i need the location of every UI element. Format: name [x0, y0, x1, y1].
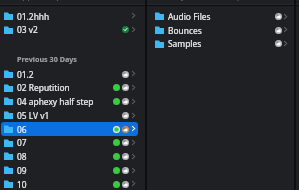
staticText: Previous 30 Days — [17, 54, 77, 64]
staticText: 02 Reputition — [17, 82, 70, 93]
button[interactable] — [1, 177, 138, 190]
staticText: 01.2hhh — [17, 11, 50, 22]
staticText: 07 — [17, 137, 27, 148]
staticText: Bounces — [168, 25, 202, 36]
staticText: Project File Backups — [168, 0, 247, 1]
staticText: Audio Files — [168, 11, 211, 22]
button[interactable] — [152, 37, 290, 51]
button[interactable] — [1, 23, 138, 37]
button[interactable] — [1, 136, 138, 150]
staticText: 04 aphexy half step — [17, 96, 94, 107]
button[interactable] — [1, 122, 138, 136]
staticText: 08 — [17, 151, 27, 162]
button[interactable] — [1, 81, 138, 95]
staticText: 06 — [17, 124, 27, 135]
staticText: 05 LV v1 — [17, 110, 50, 121]
button[interactable] — [1, 95, 138, 109]
button[interactable] — [1, 108, 138, 122]
button[interactable] — [1, 149, 138, 163]
staticText: 03 v2 — [17, 24, 38, 35]
button[interactable] — [1, 9, 138, 23]
button[interactable] — [1, 67, 138, 81]
staticText: Samples — [168, 38, 202, 49]
button[interactable] — [152, 9, 290, 23]
staticText: 10 — [17, 179, 27, 190]
button[interactable] — [1, 163, 138, 177]
staticText: 09 — [17, 165, 27, 176]
staticText: Apple Loops — [17, 0, 66, 1]
staticText: 01.2 — [17, 69, 34, 80]
button[interactable] — [152, 23, 290, 37]
